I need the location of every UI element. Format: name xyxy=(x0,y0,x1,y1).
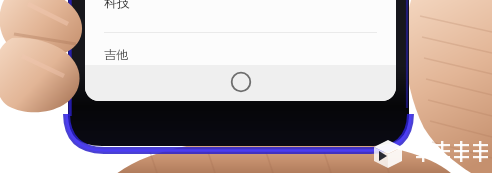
staticText: 科技 xyxy=(104,0,130,10)
button[interactable]: 吉他 xyxy=(85,33,396,65)
button[interactable]: Home xyxy=(211,67,271,97)
staticText: 吉他 xyxy=(104,47,128,62)
button[interactable]: 科技 xyxy=(85,0,396,24)
